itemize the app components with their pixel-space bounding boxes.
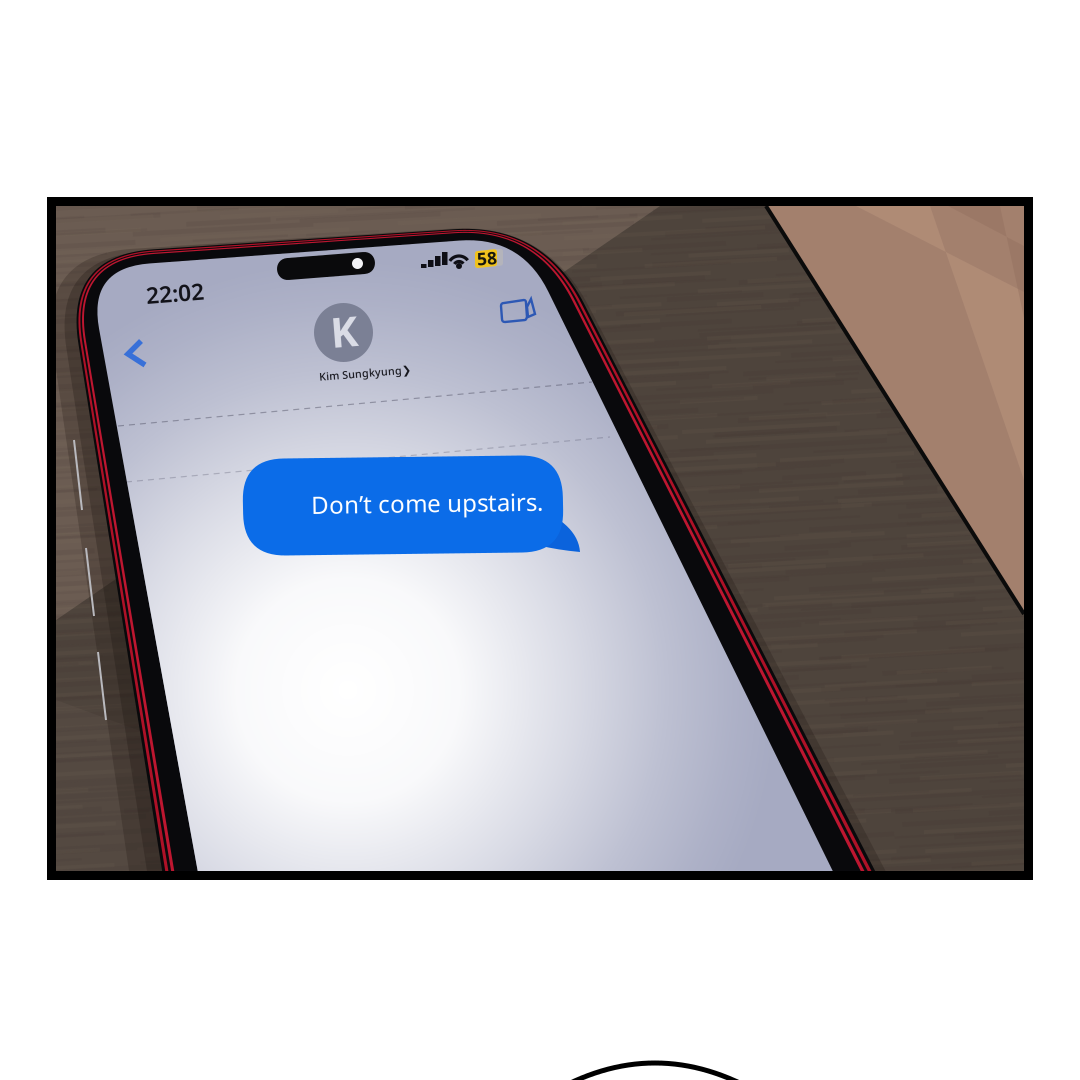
staticText: K — [330, 304, 357, 358]
staticText: Kim Sungkyung❯ — [319, 366, 411, 380]
button[interactable]: Video call — [0, 0, 1080, 1080]
staticText: 58 — [477, 246, 497, 269]
staticText: Don’t come upstairs. — [311, 487, 543, 519]
button[interactable]: Back — [0, 0, 1080, 1080]
staticText: 22:02 — [146, 278, 204, 308]
